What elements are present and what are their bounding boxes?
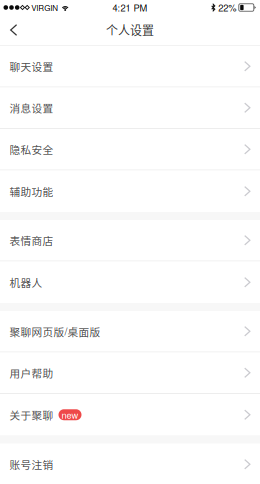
button[interactable]: 关于聚聊 [0, 394, 260, 435]
staticText: 账号注销 [9, 457, 53, 472]
staticText: 消息设置 [9, 100, 53, 115]
button[interactable]: 机器人 [0, 261, 260, 303]
staticText: 22% [218, 1, 236, 14]
staticText: 4:21 PM [112, 1, 147, 14]
staticText: 聚聊网页版/桌面版 [9, 323, 100, 339]
staticText: new [61, 408, 78, 421]
button[interactable]: 账号注销 [0, 443, 260, 484]
button[interactable]: 聚聊网页版/桌面版 [0, 311, 260, 352]
button[interactable]: Back [0, 18, 31, 42]
staticText: 表情商店 [9, 233, 53, 248]
button[interactable]: 聊天设置 [0, 46, 260, 87]
staticText: 隐私安全 [9, 142, 53, 157]
staticText: 辅助功能 [9, 184, 53, 199]
staticText: 关于聚聊 [9, 407, 53, 422]
button[interactable]: 辅助功能 [0, 170, 260, 212]
staticText: 用户帮助 [9, 365, 53, 380]
staticText: 个人设置 [106, 21, 154, 38]
button[interactable]: 消息设置 [0, 87, 260, 129]
staticText: 机器人 [9, 275, 42, 290]
staticText: 聊天设置 [9, 59, 53, 74]
button[interactable]: 隐私安全 [0, 129, 260, 170]
button[interactable]: 用户帮助 [0, 352, 260, 394]
button[interactable]: 表情商店 [0, 220, 260, 261]
staticText: VIRGIN [31, 2, 58, 13]
